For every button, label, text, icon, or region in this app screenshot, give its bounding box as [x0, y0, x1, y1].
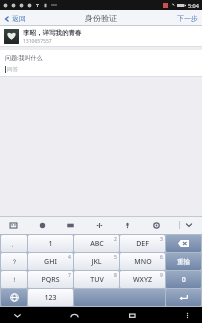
button[interactable]: 返回 [0, 12, 30, 25]
staticText: WXYZ [133, 275, 152, 285]
button[interactable]: TUV [74, 271, 119, 288]
staticText: 1310657557 [23, 38, 52, 45]
staticText: ！ [11, 276, 18, 284]
button[interactable]: 下一步 [173, 12, 202, 25]
button[interactable]: Space [74, 289, 165, 306]
button[interactable]: 1 [28, 235, 73, 252]
staticText: ？ [11, 258, 18, 266]
staticText: 2 [114, 236, 117, 243]
staticText: 3 [160, 236, 163, 243]
staticText: 5 [114, 254, 117, 261]
staticText: 问题:我叫什么 [5, 54, 43, 62]
button[interactable]: ？ [1, 253, 27, 270]
staticText: 8 [114, 272, 117, 279]
button[interactable]: Recents [125, 308, 139, 322]
staticText: 1 [48, 239, 53, 249]
staticText: 回答 [7, 66, 18, 73]
staticText: 5:04 [188, 2, 199, 9]
button[interactable]: 重输 [166, 253, 201, 270]
staticText: PQRS [41, 275, 60, 285]
staticText: 123 [44, 293, 57, 303]
button[interactable]: Move cursor [94, 220, 105, 231]
staticText: DEF [136, 239, 149, 249]
staticText: 、 [11, 240, 18, 248]
button[interactable]: ！ [1, 271, 27, 288]
button[interactable]: MNO [120, 253, 165, 270]
staticText: 返回 [12, 14, 26, 23]
staticText: TUV [90, 275, 104, 285]
staticText: 下一步 [177, 14, 198, 23]
button[interactable]: More options [182, 310, 192, 320]
staticText: 4 [68, 254, 71, 261]
staticText: 重输 [177, 258, 190, 266]
staticText: 7 [68, 272, 71, 279]
button[interactable]: GHI [28, 253, 73, 270]
button[interactable]: Clipboard [65, 220, 76, 231]
staticText: 9 [160, 272, 163, 279]
button[interactable]: PQRS [28, 271, 73, 288]
button[interactable]: Home [67, 308, 81, 322]
button[interactable]: ABC [74, 235, 119, 252]
button[interactable]: Settings [151, 220, 162, 231]
button[interactable]: WXYZ [120, 271, 165, 288]
button[interactable]: JKL [74, 253, 119, 270]
button[interactable]: Hide keyboard [184, 220, 194, 230]
staticText: 身份验证 [85, 13, 117, 23]
button[interactable]: Emoji [37, 220, 48, 231]
staticText: 李昭，详写我的青春 [23, 29, 82, 37]
button[interactable]: Enter [166, 289, 201, 306]
button[interactable]: Voice input [122, 220, 133, 231]
staticText: MNO [134, 257, 152, 267]
button[interactable]: 问题:我叫什么 [0, 50, 202, 77]
staticText: 0 [182, 275, 186, 284]
button[interactable]: Keyboard layout [8, 220, 19, 231]
button[interactable]: 、 [1, 235, 27, 252]
button[interactable]: 0 [166, 271, 201, 288]
button[interactable]: Input method [1, 289, 27, 306]
button[interactable]: Backspace [166, 235, 201, 252]
button[interactable]: DEF [120, 235, 165, 252]
button[interactable]: Back [10, 308, 24, 322]
staticText: ABC [90, 239, 104, 249]
staticText: GHI [44, 257, 57, 267]
button[interactable]: 123 [28, 289, 73, 306]
staticText: 6 [160, 254, 163, 261]
staticText: JKL [91, 257, 102, 267]
